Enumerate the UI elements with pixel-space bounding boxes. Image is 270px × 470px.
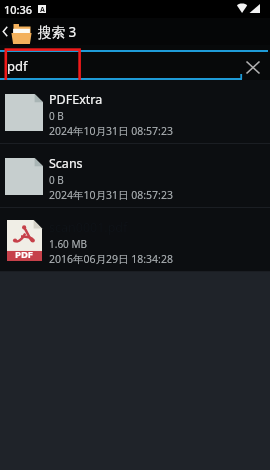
staticText: 2024年10月31日 08:57:23 (49, 124, 173, 138)
button[interactable]: PDFExtra (0, 80, 270, 143)
button[interactable]: Back (0, 18, 270, 45)
button[interactable]: Clear search (241, 55, 265, 79)
staticText: 10:36 (4, 2, 33, 17)
button[interactable]: PDF (0, 208, 270, 271)
staticText: Scans (49, 155, 83, 172)
staticText: A (40, 5, 45, 13)
button[interactable]: Scans (0, 144, 270, 207)
staticText: pdf (7, 57, 28, 75)
staticText: 2016年06月29日 18:34:28 (49, 252, 173, 266)
staticText: 0 B (49, 109, 64, 123)
other: Back (1, 24, 9, 39)
staticText: 2024年10月31日 08:57:23 (49, 188, 173, 202)
staticText: PDFExtra (49, 91, 103, 108)
staticText: 0 B (49, 173, 64, 187)
staticText: 搜索 3 (38, 23, 77, 41)
staticText: PDF (15, 248, 34, 261)
staticText: 1.60 MB (49, 237, 88, 251)
